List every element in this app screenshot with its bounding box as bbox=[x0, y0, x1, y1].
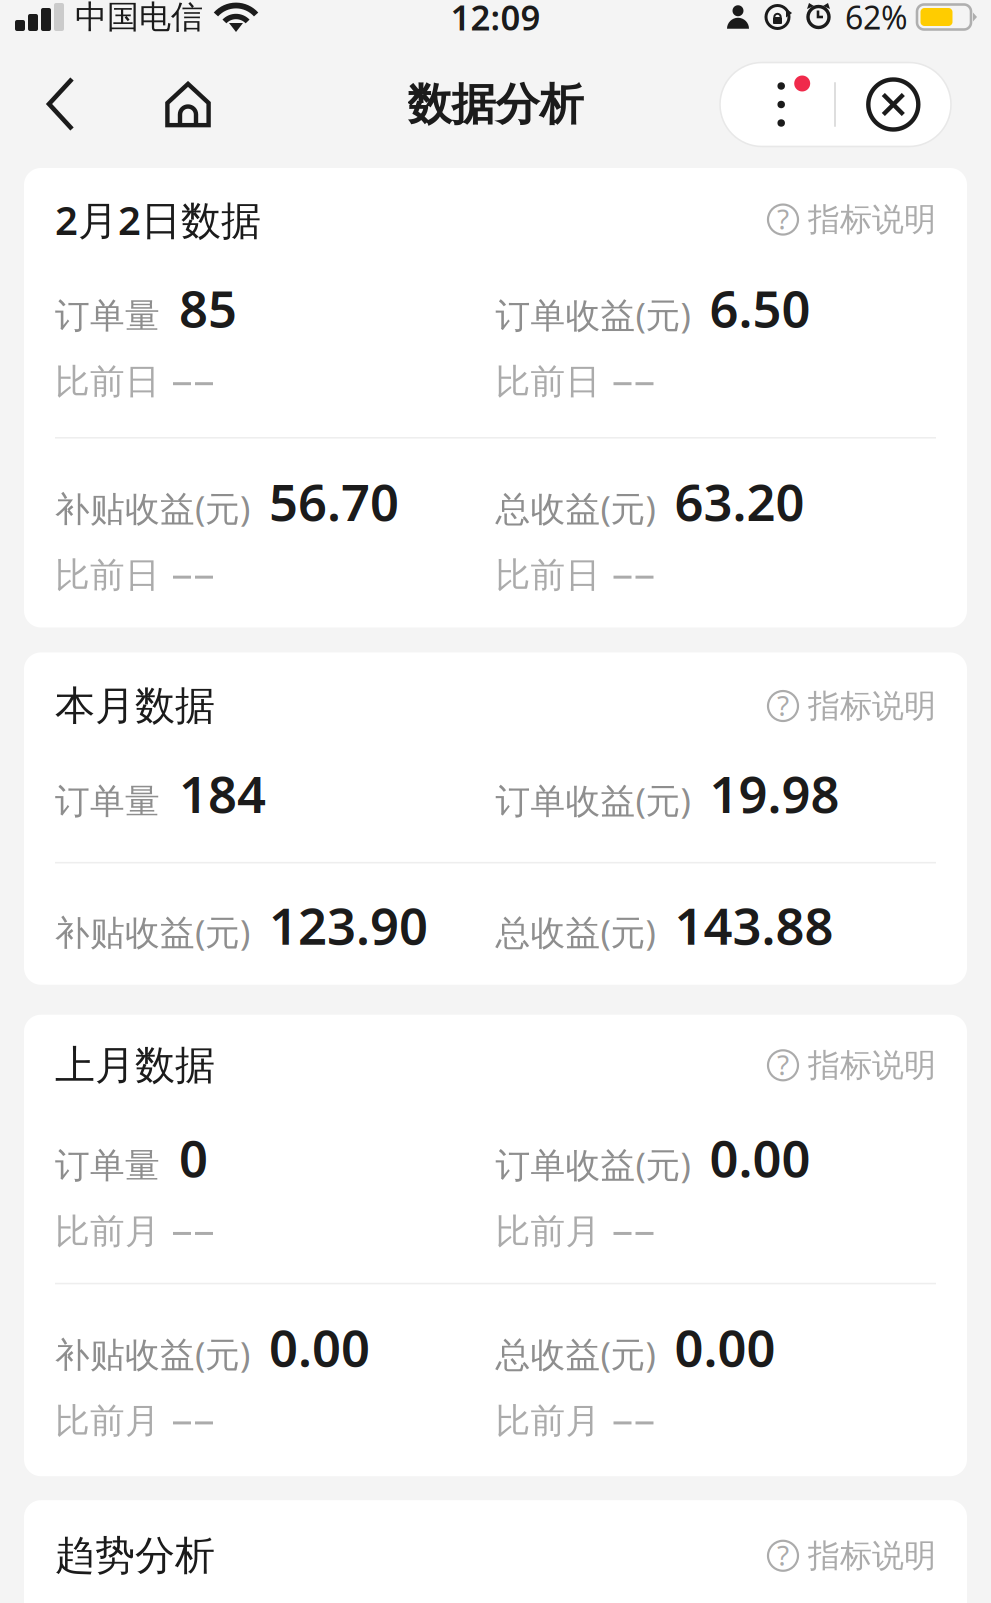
staticText: 总收益(元) bbox=[495, 1331, 655, 1377]
staticText: 12:09 bbox=[450, 0, 540, 40]
staticText: 比前日 bbox=[495, 554, 600, 596]
staticText: 63.20 bbox=[674, 468, 804, 535]
staticText: 184 bbox=[179, 760, 266, 827]
staticText: 本月数据 bbox=[55, 681, 215, 730]
staticText: 指标说明 bbox=[808, 1046, 936, 1085]
staticText: 指标说明 bbox=[808, 200, 936, 239]
staticText: 指标说明 bbox=[808, 1536, 936, 1575]
staticText: 比前月 bbox=[55, 1210, 160, 1253]
staticText: 比前日 bbox=[55, 554, 160, 596]
staticText: 比前月 bbox=[495, 1400, 600, 1442]
staticText: 6.50 bbox=[709, 274, 810, 341]
staticText: ? bbox=[777, 686, 789, 724]
staticText: 订单收益(元) bbox=[495, 1141, 690, 1187]
staticText: 0.00 bbox=[269, 1313, 370, 1381]
staticText: ? bbox=[777, 1046, 789, 1083]
staticText: 比前日 bbox=[55, 360, 160, 403]
staticText: 0.00 bbox=[709, 1124, 810, 1191]
staticText: 订单量 bbox=[55, 1144, 160, 1187]
staticText: 数据分析 bbox=[407, 77, 583, 131]
staticText: 比前月 bbox=[495, 1210, 600, 1253]
button[interactable]: ? bbox=[767, 200, 936, 239]
staticText: 补贴收益(元) bbox=[55, 485, 250, 531]
staticText: 总收益(元) bbox=[495, 485, 655, 531]
button[interactable]: Home bbox=[121, 55, 255, 153]
staticText: 上月数据 bbox=[55, 1041, 215, 1090]
button[interactable]: Close bbox=[836, 62, 951, 146]
staticText: 19.98 bbox=[709, 760, 839, 827]
staticText: 0.00 bbox=[674, 1313, 775, 1381]
staticText: 143.88 bbox=[674, 891, 833, 959]
staticText: 123.90 bbox=[269, 891, 428, 959]
staticText: 指标说明 bbox=[808, 686, 936, 726]
staticText: 62% bbox=[845, 0, 908, 38]
staticText: 补贴收益(元) bbox=[55, 1331, 250, 1377]
staticText: 85 bbox=[179, 274, 237, 341]
button[interactable]: ? bbox=[767, 1046, 936, 1085]
button[interactable]: ? bbox=[767, 1536, 936, 1575]
button[interactable]: More bbox=[720, 62, 834, 146]
staticText: 趋势分析 bbox=[55, 1531, 215, 1580]
staticText: ? bbox=[777, 1536, 789, 1573]
staticText: 订单收益(元) bbox=[495, 291, 690, 337]
staticText: 中国电信 bbox=[75, 0, 203, 37]
staticText: 2月2日数据 bbox=[55, 193, 261, 246]
staticText: ? bbox=[777, 200, 789, 237]
staticText: 56.70 bbox=[269, 468, 399, 535]
staticText: 比前月 bbox=[55, 1400, 160, 1442]
staticText: 0 bbox=[179, 1124, 208, 1191]
staticText: 订单量 bbox=[55, 295, 160, 337]
staticText: 订单量 bbox=[55, 780, 160, 823]
staticText: 订单收益(元) bbox=[495, 777, 690, 823]
staticText: 总收益(元) bbox=[495, 909, 655, 955]
button[interactable]: Back bbox=[0, 55, 121, 153]
button[interactable]: ? bbox=[767, 686, 936, 726]
staticText: 补贴收益(元) bbox=[55, 909, 250, 955]
staticText: 比前日 bbox=[495, 360, 600, 403]
